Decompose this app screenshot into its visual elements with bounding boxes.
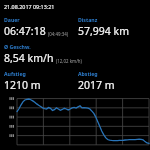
staticText: Abstieg bbox=[78, 70, 98, 77]
staticText: 1210 m bbox=[4, 78, 41, 92]
button[interactable]: Abstieg bbox=[74, 69, 150, 93]
button[interactable]: Distanz bbox=[74, 15, 150, 39]
staticText: (12,02 km/h) bbox=[56, 58, 82, 64]
button[interactable]: Aufstieg bbox=[0, 69, 74, 93]
button[interactable]: Ø Geschw. bbox=[0, 42, 150, 66]
staticText: Distanz bbox=[78, 16, 98, 23]
staticText: Aufstieg bbox=[4, 70, 26, 77]
staticText: Dauer bbox=[4, 16, 20, 23]
staticText: (04:49:34) bbox=[48, 31, 69, 37]
button[interactable]: Elevation profile chart bbox=[0, 96, 150, 150]
button[interactable]: 21.08.2017 09:13:21 bbox=[0, 0, 150, 11]
staticText: 8,54 km/h bbox=[4, 51, 54, 65]
staticText: 2017 m bbox=[78, 78, 115, 92]
staticText: 57,994 km bbox=[78, 24, 129, 38]
staticText: 06:47:18 bbox=[4, 24, 46, 38]
button[interactable]: Dauer bbox=[0, 15, 74, 39]
staticText: Ø Geschw. bbox=[4, 43, 31, 50]
staticText: 21.08.2017 09:13:21 bbox=[4, 3, 55, 10]
